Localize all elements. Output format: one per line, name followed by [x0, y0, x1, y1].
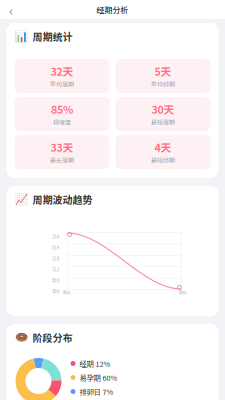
staticText: 30.0 — [52, 288, 59, 294]
staticText: 5天 — [154, 63, 171, 79]
staticText: 🍩 — [14, 331, 27, 344]
staticText: 最短周期 — [151, 118, 175, 127]
staticText: 排卵日 7% — [79, 386, 113, 397]
staticText: 31.8 — [52, 255, 59, 262]
staticText: 32.4 — [52, 244, 59, 251]
staticText: 08月 — [178, 289, 186, 296]
staticText: 周期统计 — [32, 29, 72, 44]
staticText: 平均周期 — [50, 80, 74, 89]
staticText: 85% — [51, 101, 73, 117]
staticText: 32天 — [50, 63, 73, 79]
staticText: 30天 — [151, 101, 174, 117]
staticText: 经期 12% — [79, 358, 110, 369]
staticText: 最长周期 — [50, 156, 74, 165]
button[interactable]: Back — [0, 0, 22, 19]
staticText: 📊 — [14, 30, 27, 43]
staticText: 📈 — [14, 193, 27, 206]
staticText: 经期分析 — [96, 4, 128, 15]
staticText: 最短经期 — [151, 156, 175, 165]
staticText: 易孕期 60% — [79, 372, 117, 383]
staticText: ‹ — [9, 0, 13, 20]
staticText: 33天 — [50, 139, 73, 155]
staticText: 规律度 — [53, 118, 71, 127]
staticText: 平均经期 — [151, 80, 175, 89]
staticText: 30.6 — [52, 277, 59, 284]
staticText: 阶段分布 — [32, 330, 72, 345]
staticText: 4天 — [154, 139, 171, 155]
staticText: 31.2 — [52, 266, 59, 273]
staticText: 33.0 — [52, 233, 59, 240]
staticText: 06月 — [62, 289, 70, 296]
staticText: 周期波动趋势 — [32, 192, 92, 207]
